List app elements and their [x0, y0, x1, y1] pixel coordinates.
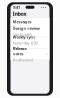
- staticText: Design review: [12, 26, 39, 31]
- staticText: Tap to open: [12, 31, 31, 37]
- staticText: Weekly sync: [12, 34, 35, 40]
- staticText: Messages: [12, 19, 31, 24]
- staticText: Yesterday 4:30 PM: [12, 40, 37, 51]
- button[interactable]: Design review: [10, 26, 49, 37]
- staticText: Draft saved: [12, 57, 32, 62]
- button[interactable]: Release notes: [10, 48, 49, 59]
- button[interactable]: Weekly sync: [10, 37, 49, 48]
- staticText: Release notes: [12, 46, 26, 56]
- staticText: 9:41: [13, 5, 20, 10]
- staticText: >: [45, 51, 47, 57]
- staticText: Inbox: [12, 10, 26, 17]
- staticText: •••: [41, 5, 47, 10]
